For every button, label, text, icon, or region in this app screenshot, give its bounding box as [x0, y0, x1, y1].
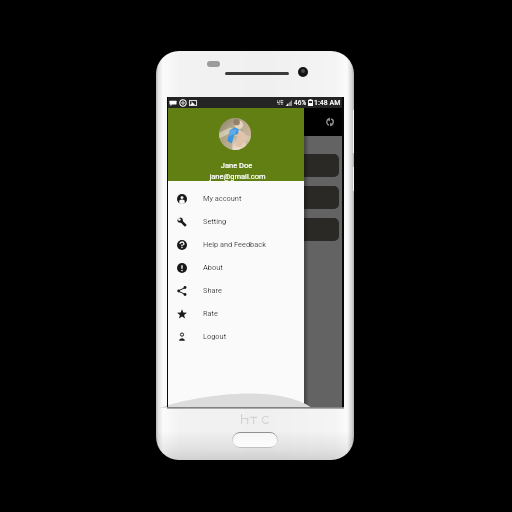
staticText: Logout: [203, 332, 227, 341]
button[interactable]: Home: [232, 432, 278, 448]
button[interactable]: About: [167, 256, 304, 279]
staticText: About: [203, 263, 223, 272]
button[interactable]: Rate: [167, 302, 304, 325]
staticText: Setting: [203, 217, 227, 226]
staticText: Help and Feedback: [203, 240, 266, 249]
staticText: My account: [203, 194, 242, 203]
button[interactable]: My account: [167, 187, 304, 210]
button[interactable]: [173, 154, 339, 177]
button[interactable]: [173, 218, 339, 241]
button[interactable]: Help and Feedback: [167, 233, 304, 256]
staticText: Rate: [203, 309, 218, 318]
button[interactable]: Setting: [167, 210, 304, 233]
staticText: 1:48 AM: [314, 98, 341, 107]
button[interactable]: Logout: [167, 325, 304, 348]
button[interactable]: [173, 186, 339, 209]
staticText: jane@gmail.com: [169, 172, 306, 181]
button[interactable]: Share: [167, 279, 304, 302]
staticText: 46%: [294, 98, 307, 107]
staticText: Share: [203, 286, 222, 295]
button[interactable]: Refresh: [321, 113, 339, 131]
staticText: Jane Doe: [168, 161, 305, 170]
